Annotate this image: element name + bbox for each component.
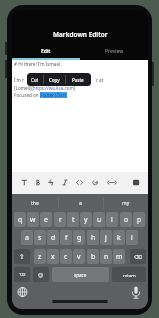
button[interactable]: m <box>113 249 125 264</box>
staticText: 123 <box>19 272 26 277</box>
staticText: return <box>123 272 136 278</box>
staticText: k <box>117 233 121 242</box>
staticText: the <box>31 200 39 207</box>
button[interactable]: w <box>27 212 39 227</box>
button[interactable]: Paste <box>65 73 90 86</box>
button[interactable] <box>59 172 72 194</box>
button[interactable]: my <box>103 196 148 211</box>
staticText: z <box>38 252 42 261</box>
staticText: w <box>30 215 36 224</box>
button[interactable]: b <box>87 249 99 264</box>
button[interactable] <box>128 288 143 304</box>
staticText: a <box>25 233 29 242</box>
button[interactable] <box>73 172 86 194</box>
button[interactable]: c <box>60 249 72 264</box>
button[interactable]: f <box>60 230 72 245</box>
button[interactable]: j <box>100 230 112 245</box>
button[interactable] <box>130 172 143 194</box>
button[interactable]: o <box>120 212 132 227</box>
staticText: my <box>122 200 130 207</box>
button[interactable] <box>31 172 44 194</box>
staticText: a <box>79 200 82 207</box>
button[interactable]: a <box>58 196 102 211</box>
staticText: # Hi there! I'm Ismael. <box>14 61 62 67</box>
button[interactable]: u <box>93 212 105 227</box>
staticText: n <box>104 252 109 261</box>
staticText: r at <box>96 77 104 83</box>
button[interactable]: a <box>21 230 33 245</box>
staticText: y <box>84 215 88 224</box>
button[interactable] <box>89 172 102 194</box>
button[interactable] <box>44 172 57 194</box>
staticText: [Lomeli](https://wa.ksa.com) <box>14 85 76 91</box>
button[interactable]: ⌫ <box>130 249 146 264</box>
button[interactable]: q <box>14 212 26 227</box>
staticText: i <box>111 215 113 224</box>
staticText: r <box>59 215 62 224</box>
staticText: x <box>51 252 55 261</box>
button[interactable]: ☺ <box>33 267 49 282</box>
staticText: f <box>65 233 68 242</box>
staticText: space <box>74 272 87 278</box>
button[interactable]: h <box>87 230 99 245</box>
staticText: e <box>44 215 48 224</box>
button[interactable]: n <box>100 249 112 264</box>
staticText: p <box>137 215 142 224</box>
staticText: q <box>18 215 23 224</box>
staticText: Preview <box>105 48 124 55</box>
staticText: ☺ <box>38 272 44 278</box>
button[interactable]: Copy <box>44 73 65 86</box>
button[interactable]: Preview <box>80 46 148 57</box>
button[interactable]: ⇧ <box>14 249 30 264</box>
staticText: Markdown Editor <box>53 30 108 39</box>
button[interactable] <box>15 288 30 304</box>
button[interactable]: x <box>47 249 59 264</box>
button[interactable]: v <box>73 249 85 264</box>
button[interactable]: z <box>34 249 46 264</box>
button[interactable] <box>18 172 31 194</box>
button[interactable]: g <box>73 230 85 245</box>
button[interactable]: t <box>67 212 79 227</box>
button[interactable]: p <box>133 212 145 227</box>
staticText: I'm r <box>14 77 24 83</box>
staticText: c <box>64 252 68 261</box>
button[interactable]: e <box>40 212 52 227</box>
staticText: h <box>91 233 96 242</box>
staticText: u <box>97 215 102 224</box>
button[interactable]: Cut <box>27 73 43 86</box>
staticText: ⇧ <box>19 253 25 261</box>
staticText: v <box>77 252 81 261</box>
button[interactable] <box>105 172 118 194</box>
button[interactable]: k <box>113 230 125 245</box>
staticText: g <box>77 233 82 242</box>
button[interactable]: d <box>47 230 59 245</box>
staticText: Focused on <box>14 92 40 98</box>
staticText: d <box>51 233 56 242</box>
button[interactable]: Edit <box>12 46 80 57</box>
staticText: b <box>91 252 96 261</box>
staticText: l <box>131 233 133 242</box>
button[interactable]: space <box>52 267 109 282</box>
staticText: s <box>38 233 42 242</box>
staticText: o <box>124 215 129 224</box>
button[interactable]: l <box>126 230 138 245</box>
staticText: Cut <box>31 77 39 83</box>
staticText: Copy <box>49 77 60 83</box>
staticText: ⌫ <box>134 254 142 260</box>
button[interactable]: r <box>54 212 66 227</box>
staticText: Paste <box>72 77 84 83</box>
button[interactable]: y <box>80 212 92 227</box>
staticText: Edit <box>41 48 51 55</box>
button[interactable]: s <box>34 230 46 245</box>
button[interactable]: the <box>12 196 57 211</box>
button[interactable]: return <box>112 267 146 282</box>
staticText: Flutter|Dart <box>40 92 67 98</box>
staticText: j <box>105 233 107 242</box>
staticText: m <box>116 252 123 261</box>
button[interactable]: 123 <box>14 267 30 282</box>
staticText: t <box>72 215 75 224</box>
button[interactable]: i <box>106 212 118 227</box>
